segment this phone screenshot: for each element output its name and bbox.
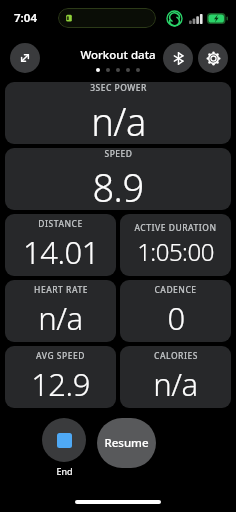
button[interactable]: Expand [10,43,40,73]
staticText: 7:04 [14,10,37,26]
button[interactable]: End [42,418,86,477]
staticText: CADENCE [154,284,197,296]
staticText: ACTIVE DURATION [134,222,217,234]
staticText: 8.9 [92,161,144,210]
staticText: End [56,465,73,477]
button[interactable]: CADENCE [120,280,231,342]
staticText: n/a [91,95,146,144]
staticText: 0 [167,297,185,339]
staticText: n/a [38,297,83,339]
staticText: Resume [104,435,149,451]
staticText: SPEED [104,148,133,160]
button[interactable]: AVG SPEED [5,346,116,408]
staticText: 12.9 [31,363,90,405]
button[interactable]: DISTANCE [5,214,116,276]
staticText: AVG SPEED [36,350,85,362]
staticText: DISTANCE [38,218,83,230]
staticText: HEART RATE [34,284,88,296]
staticText: Workout data [80,47,156,63]
button[interactable]: Bluetooth [163,43,193,73]
staticText: CALORIES [154,350,198,362]
staticText: 1:05:00 [137,235,214,268]
staticText: 3SEC POWER [90,82,147,94]
button[interactable]: Resume [97,418,156,468]
staticText: 14.01 [23,231,99,273]
button[interactable]: SPEED [5,148,231,210]
staticText: n/a [153,363,198,405]
button[interactable]: HEART RATE [5,280,116,342]
button[interactable]: 3SEC POWER [5,82,231,144]
button[interactable]: ACTIVE DURATION [120,214,231,276]
button[interactable]: CALORIES [120,346,231,408]
button[interactable]: Settings [198,43,228,73]
